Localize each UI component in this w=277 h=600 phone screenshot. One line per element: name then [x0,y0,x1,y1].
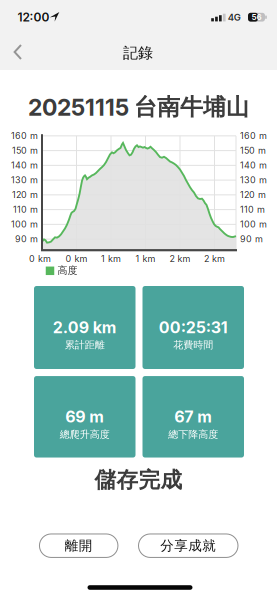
staticText: 記錄 [123,44,153,62]
staticText: 累計距離 [65,339,105,351]
staticText: 120 m [240,189,266,200]
button[interactable] [5,37,31,67]
staticText: 離開 [65,537,93,554]
staticText: 4G [228,12,241,23]
staticText: 100 m [11,219,38,230]
staticText: 130 m [11,175,38,186]
staticText: 儲存完成 [94,466,182,494]
staticText: 分享成就 [160,537,216,554]
button[interactable]: 分享成就 [138,533,238,558]
staticText: 0 km [29,253,51,264]
staticText: 12:00 [17,10,49,24]
staticText: 花費時間 [173,339,213,351]
staticText: 160 m [240,130,267,141]
staticText: 69 m [65,407,104,426]
staticText: 2 km [204,253,225,264]
staticText: 110 m [240,204,265,215]
staticText: 150 m [12,145,38,156]
staticText: 100 m [240,219,267,230]
button[interactable]: 離開 [39,533,118,558]
staticText: 160 m [11,130,38,141]
staticText: 高度 [57,264,77,277]
staticText: 2 km [169,253,190,264]
staticText: 120 m [12,189,38,200]
staticText: 0 km [65,253,87,264]
staticText: 56 [251,12,261,22]
staticText: 67 m [174,407,212,426]
staticText: 總下降高度 [168,428,218,441]
staticText: 00:25:31 [159,318,228,337]
staticText: 1 km [101,253,121,264]
staticText: 20251115 台南牛埔山 [28,92,249,121]
staticText: 150 m [240,145,266,156]
staticText: 130 m [240,175,267,186]
staticText: 110 m [13,204,38,215]
staticText: 90 m [15,234,38,245]
staticText: 140 m [11,160,38,171]
staticText: 90 m [240,234,263,245]
staticText: 總爬升高度 [60,428,110,441]
staticText: 2.09 km [53,318,117,337]
staticText: 1 km [135,253,155,264]
staticText: 140 m [240,160,267,171]
